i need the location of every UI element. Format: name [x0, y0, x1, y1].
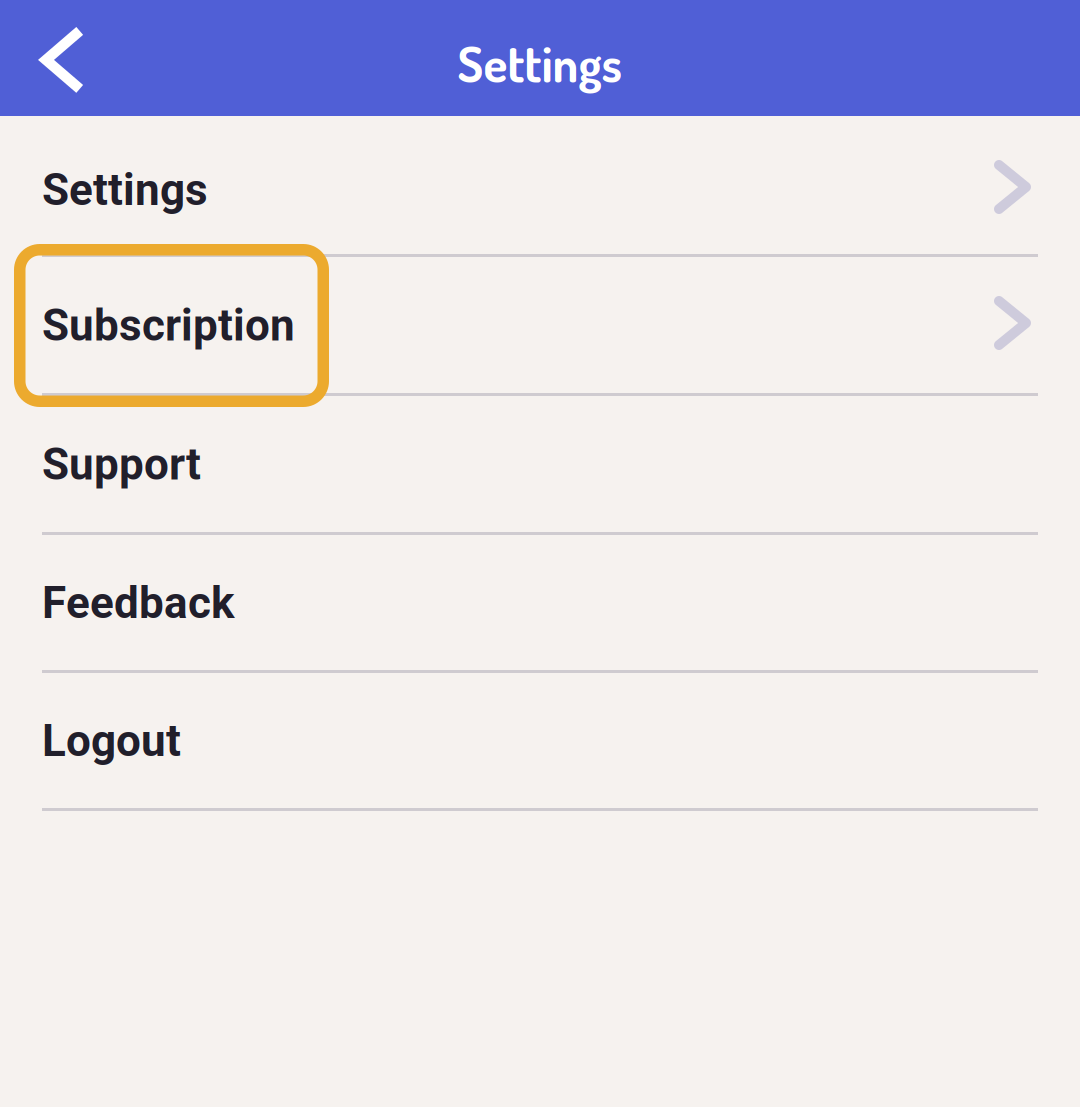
button[interactable]: Subscription: [0, 257, 1080, 396]
button[interactable]: Settings: [0, 116, 1080, 257]
staticText: Settings: [42, 164, 208, 216]
staticText: Feedback: [42, 577, 235, 629]
staticText: Support: [42, 439, 201, 490]
staticText: Subscription: [42, 300, 295, 351]
button[interactable]: Feedback: [0, 535, 1080, 673]
button[interactable]: Logout: [0, 673, 1080, 811]
button[interactable]: Back: [0, 0, 86, 116]
staticText: Settings: [457, 32, 622, 94]
staticText: Logout: [42, 715, 181, 767]
button[interactable]: Support: [0, 396, 1080, 535]
